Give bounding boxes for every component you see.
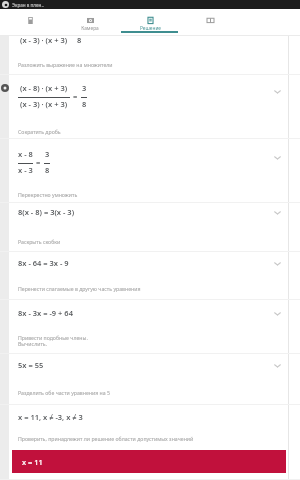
staticText: x - 3 (18, 165, 33, 175)
staticText: Разделить обе части уравнения на 5 (18, 389, 110, 396)
staticText: Раскрыть скобки (18, 238, 61, 245)
staticText: = (73, 91, 78, 101)
staticText: Камера (81, 25, 99, 32)
staticText: 3 (82, 83, 87, 93)
button[interactable]: Видео-объяснение (1, 84, 9, 92)
button[interactable]: 8(x - 8) = 3(x - 3) (0, 203, 300, 252)
button[interactable]: x = 11 (12, 450, 286, 473)
staticText: 8(x - 8) = 3(x - 3) (18, 207, 75, 217)
staticText: 8 (82, 99, 87, 109)
staticText: Проверить, принадлежит ли решение област… (18, 435, 194, 442)
staticText: (x - 3) · (x + 3) (20, 99, 68, 109)
button[interactable]: 5x = 55 (0, 354, 300, 405)
button[interactable]: x - 8 (0, 139, 300, 203)
staticText: 8 (77, 35, 82, 45)
button[interactable]: Решение (120, 9, 180, 36)
staticText: Сократить дробь (18, 128, 61, 135)
button[interactable]: Камера (60, 9, 120, 36)
button[interactable]: 8x - 64 = 3x - 9 (0, 252, 300, 300)
button[interactable]: (x - 8) · (x + 3) (0, 75, 300, 139)
staticText: x - 8 (18, 149, 33, 159)
button[interactable]: x = 11, x ≠ -3, x ≠ 3 (0, 405, 300, 480)
staticText: Перекрестно умножить (18, 191, 78, 198)
staticText: Решение (140, 25, 161, 32)
staticText: x = 11 (22, 457, 43, 467)
other: Развернуть (273, 259, 282, 268)
staticText: = (36, 157, 41, 167)
staticText: (x - 3) · (x + 3) (20, 35, 68, 45)
staticText: 5x = 55 (18, 360, 44, 370)
staticText: Перенести слагаемые в другую часть уравн… (18, 285, 141, 292)
staticText: 8x - 64 = 3x - 9 (18, 258, 69, 268)
staticText: 8x - 3x = -9 + 64 (18, 308, 73, 318)
staticText: (x - 8) · (x + 3) (20, 83, 68, 93)
button[interactable]: 8x - 3x = -9 + 64 (0, 300, 300, 354)
staticText: 8 (45, 165, 50, 175)
other: Развернуть (273, 87, 282, 96)
button[interactable]: Ввод (0, 9, 60, 36)
staticText: Привести подобные члены. Вычислить. (18, 334, 88, 347)
staticText: Разложить выражение на множители (18, 61, 113, 68)
button[interactable]: Учебник (180, 9, 240, 36)
staticText: Экран в плен.. (12, 2, 44, 8)
other: Развернуть (273, 153, 282, 162)
other: Развернуть (273, 309, 282, 318)
other: Развернуть (273, 361, 282, 370)
staticText: x = 11, x ≠ -3, x ≠ 3 (18, 412, 83, 422)
other: Развернуть (273, 208, 282, 217)
staticText: 3 (45, 149, 50, 159)
